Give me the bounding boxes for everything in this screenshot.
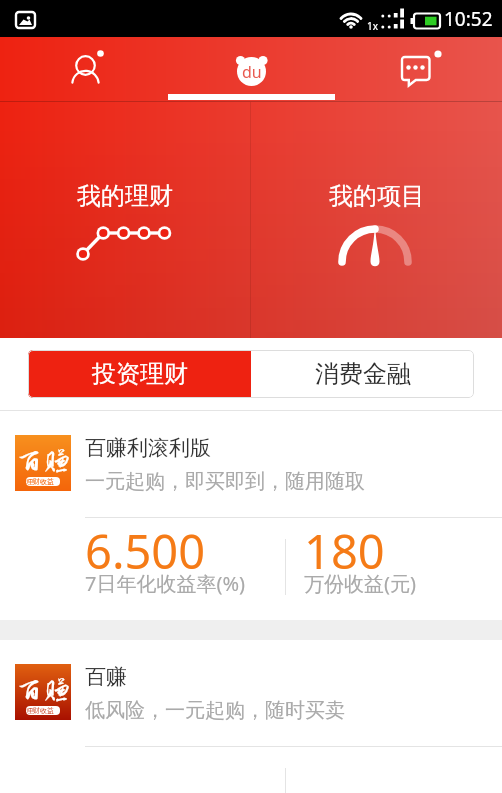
staticText: 百赚利滚利版 [85,435,211,461]
button[interactable]: Profile [0,37,168,102]
staticText: 180 [304,519,385,583]
staticText: 我的理财 [77,181,173,211]
staticText: 7日年化收益率(%) [85,570,246,597]
staticText: 百赚 [15,446,71,477]
staticText: 百赚 [85,664,127,690]
staticText: 理财收益高 [26,706,60,715]
staticText: 万份收益(元) [304,570,416,597]
staticText: 10:52 [444,6,493,32]
staticText: 1x [367,19,379,33]
button[interactable]: 百赚 [0,411,502,620]
staticText: 低风险，一元起购，随时买卖 [85,698,345,723]
button[interactable]: Messages [335,37,502,102]
button[interactable]: 投资理财 [28,350,251,398]
button[interactable]: 我的项目 [251,102,502,338]
staticText: 投资理财 [92,359,188,389]
button[interactable]: Home [168,37,335,102]
staticText: 理财收益高 [26,477,60,486]
staticText: 百赚 [15,675,71,706]
button[interactable]: 消费金融 [251,350,474,398]
button[interactable]: 我的理财 [0,102,250,338]
staticText: 消费金融 [315,359,411,389]
staticText: du [242,61,262,83]
button[interactable]: 百赚 [0,640,502,793]
staticText: 我的项目 [329,181,425,211]
staticText: 一元起购，即买即到，随用随取 [85,469,365,494]
staticText: 6.500 [85,519,206,583]
